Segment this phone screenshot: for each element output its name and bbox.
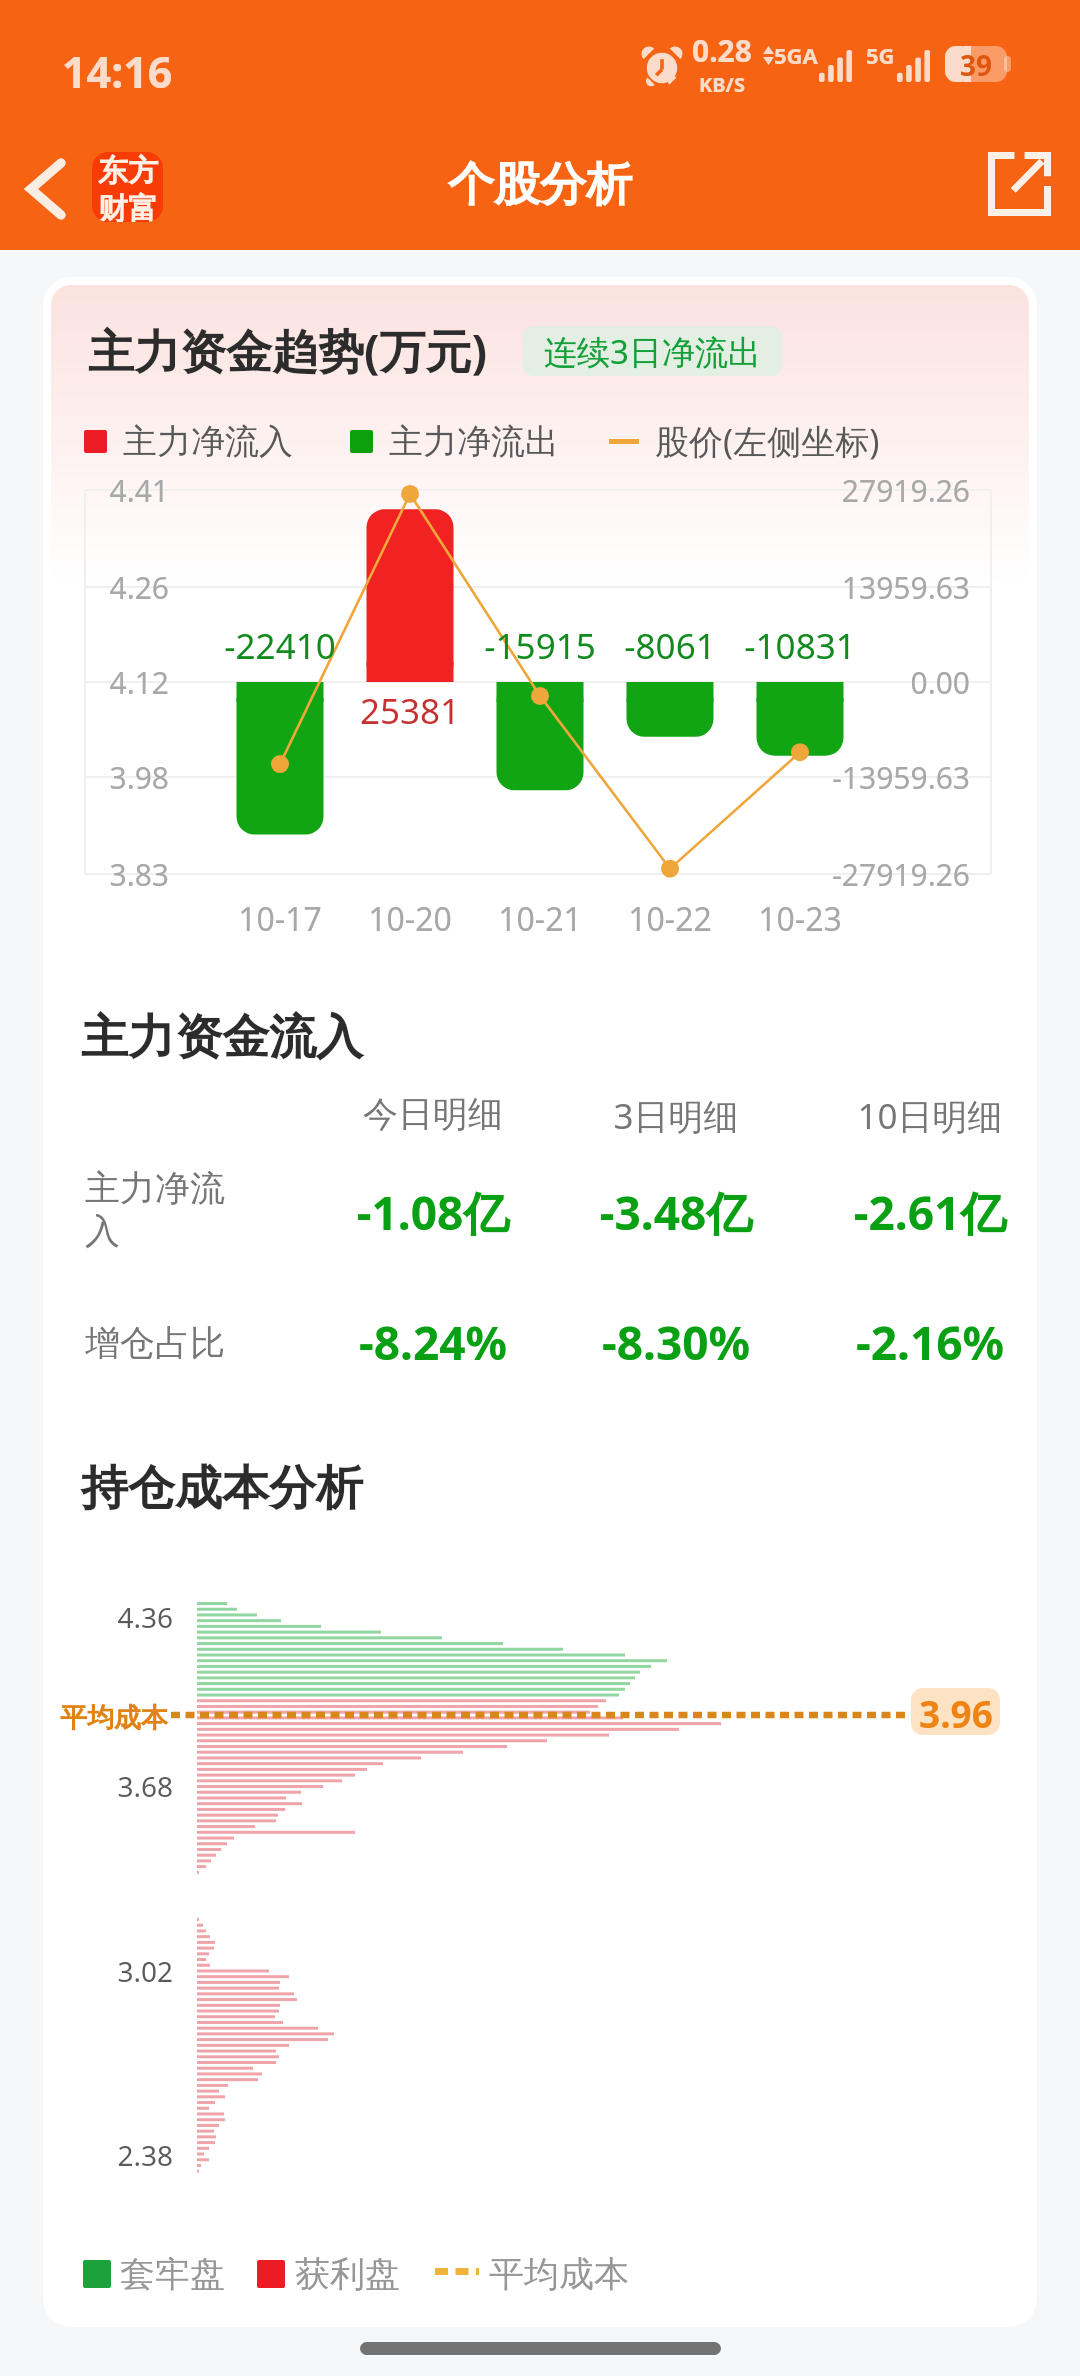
staticText: 10-23	[700, 897, 900, 941]
staticText: 3.02	[43, 1952, 173, 1990]
staticText: -15915	[420, 622, 660, 670]
staticText: 今日明细	[273, 1092, 593, 1136]
staticText: 平均成本	[60, 1701, 168, 1735]
staticText: 3.96	[919, 1688, 993, 1735]
staticText: 增仓占比	[85, 1321, 225, 1365]
staticText: 3日明细	[516, 1092, 836, 1140]
staticText: 获利盘	[295, 2252, 400, 2296]
staticText: 3.98	[43, 757, 169, 798]
staticText: 主力净流入	[85, 1166, 235, 1254]
staticText: -13959.63	[670, 757, 970, 798]
staticText: 财富	[98, 190, 158, 222]
staticText: 5GA	[774, 40, 818, 70]
staticText: 10日明细	[770, 1092, 1037, 1140]
staticText: 4.26	[43, 567, 169, 608]
staticText: 东方	[98, 152, 158, 190]
staticText: 0.00	[670, 662, 970, 703]
staticText: 4.41	[43, 470, 169, 511]
staticText: 0.28	[692, 30, 752, 71]
staticText: -1.08亿	[273, 1181, 593, 1244]
staticText: -3.48亿	[516, 1181, 836, 1244]
staticText: -8.24%	[273, 1311, 593, 1374]
staticText: 14:16	[62, 42, 173, 101]
staticText: 25381	[290, 687, 530, 735]
button[interactable]: Back	[0, 128, 92, 250]
staticText: 39	[960, 46, 993, 82]
staticText: -8.30%	[516, 1311, 836, 1374]
staticText: 27919.26	[670, 470, 970, 511]
staticText: 持仓成本分析	[81, 1459, 363, 1518]
staticText: 主力资金趋势(万元)	[88, 319, 488, 382]
staticText: 套牢盘	[120, 2252, 225, 2296]
staticText: 10-21	[440, 897, 640, 941]
staticText: 13959.63	[670, 567, 970, 608]
button[interactable]: Share	[950, 128, 1080, 250]
staticText: -8061	[550, 622, 790, 670]
staticText: 10-20	[310, 897, 510, 941]
staticText: 2.38	[43, 2136, 173, 2174]
staticText: -10831	[680, 622, 920, 670]
staticText: -22410	[160, 622, 400, 670]
staticText: 10-22	[570, 897, 770, 941]
staticText: 主力净流入	[123, 420, 293, 463]
staticText: 主力净流出	[389, 420, 559, 463]
staticText: 5G	[866, 40, 895, 70]
button[interactable]: 东方	[92, 152, 163, 222]
staticText: 连续3日净流出	[544, 329, 761, 374]
staticText: 3.68	[43, 1767, 173, 1805]
staticText: KB/S	[699, 71, 745, 98]
staticText: 股价(左侧坐标)	[655, 418, 880, 464]
staticText: -27919.26	[670, 854, 970, 895]
staticText: -2.61亿	[770, 1181, 1037, 1244]
staticText: 个股分析	[0, 156, 1080, 214]
staticText: 4.36	[43, 1598, 173, 1636]
staticText: 4.12	[43, 662, 169, 703]
staticText: 主力资金流入	[81, 1008, 363, 1067]
staticText: -2.16%	[770, 1311, 1037, 1374]
staticText: 3.83	[43, 854, 169, 895]
staticText: 平均成本	[489, 2252, 629, 2296]
staticText: 10-17	[180, 897, 380, 941]
